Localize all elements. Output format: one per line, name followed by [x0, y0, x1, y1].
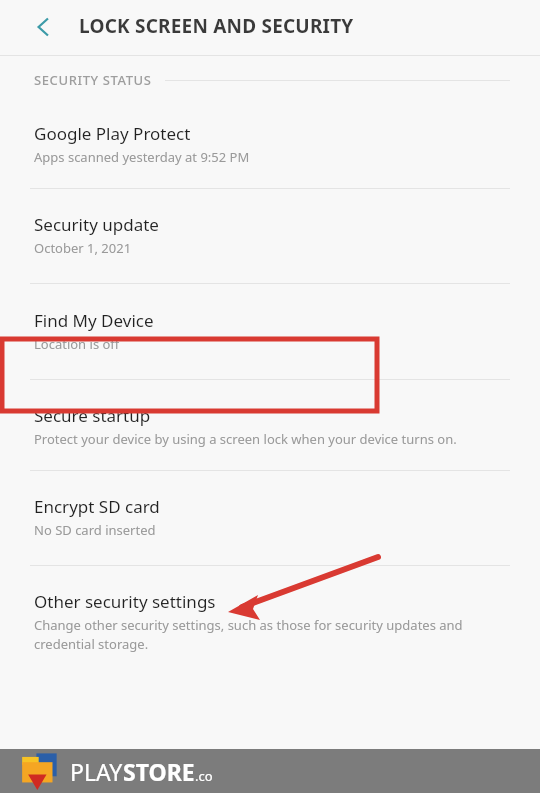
staticText: SECURITY STATUS: [34, 71, 152, 89]
button[interactable]: Secure startup: [0, 380, 540, 470]
staticText: Security update: [34, 213, 159, 236]
staticText: Google Play Protect: [34, 122, 191, 145]
button[interactable]: Other security settings: [0, 566, 540, 663]
staticText: October 1, 2021: [34, 239, 132, 257]
staticText: Location is off: [34, 335, 120, 353]
staticText: Other security settings: [34, 590, 216, 613]
button[interactable]: Google Play Protect: [0, 122, 540, 188]
staticText: Secure startup: [34, 404, 151, 427]
staticText: .co: [195, 767, 213, 785]
staticText: LOCK SCREEN AND SECURITY: [79, 13, 354, 39]
button[interactable]: Back: [19, 3, 67, 51]
button[interactable]: Encrypt SD card: [0, 471, 540, 565]
staticText: Protect your device by using a screen lo…: [34, 430, 457, 448]
button[interactable]: Security update: [0, 189, 540, 283]
button[interactable]: Find My Device: [0, 284, 540, 379]
staticText: Encrypt SD card: [34, 495, 160, 518]
staticText: No SD card inserted: [34, 521, 156, 539]
staticText: Change other security settings, such as …: [34, 616, 494, 653]
staticText: Apps scanned yesterday at 9:52 PM: [34, 148, 250, 166]
staticText: PLAY: [70, 756, 123, 787]
staticText: Find My Device: [34, 309, 154, 332]
staticText: STORE: [123, 756, 195, 787]
